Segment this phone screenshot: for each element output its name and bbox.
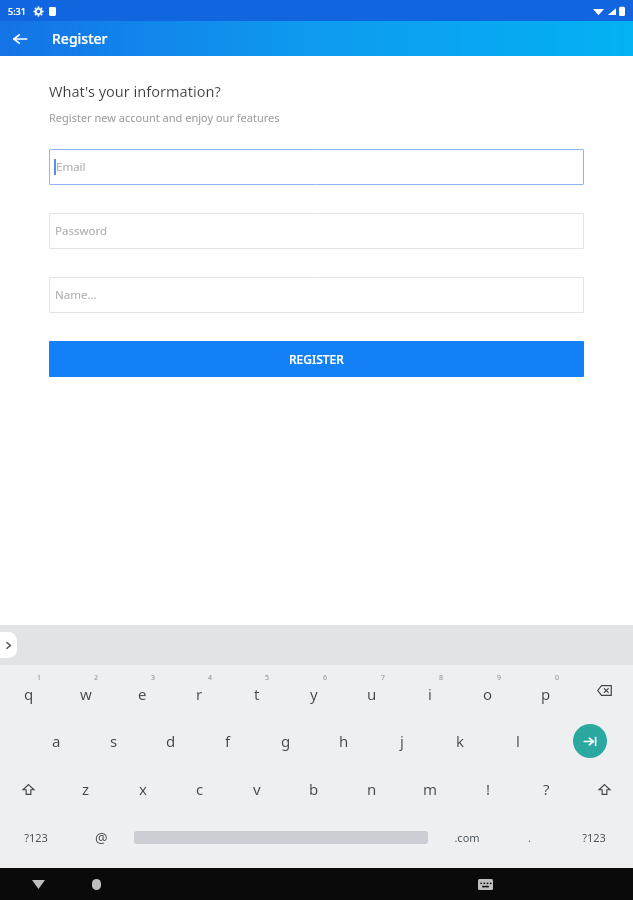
staticText: a	[52, 731, 61, 751]
button[interactable]: 0	[517, 665, 575, 716]
staticText: c	[196, 779, 204, 799]
staticText: 0	[555, 673, 560, 683]
staticText: 9	[497, 673, 502, 683]
button[interactable]: 7	[343, 665, 401, 716]
button[interactable]: .com	[431, 813, 503, 861]
button[interactable]: ?	[517, 765, 575, 813]
button[interactable]: 8	[401, 665, 459, 716]
staticText: 7	[381, 673, 386, 683]
button[interactable]: Shift	[575, 765, 633, 813]
button[interactable]: 6	[285, 665, 343, 716]
button[interactable]: ?123	[555, 813, 633, 861]
button[interactable]: Hide keyboard	[24, 870, 52, 898]
button[interactable]: Switch keyboard	[471, 870, 499, 898]
button[interactable]: z	[57, 765, 114, 813]
button[interactable]: s	[85, 716, 142, 765]
button[interactable]: REGISTER	[49, 341, 584, 377]
button[interactable]: 9	[459, 665, 517, 716]
staticText: k	[456, 731, 465, 751]
staticText: v	[253, 779, 261, 799]
button[interactable]: g	[257, 716, 315, 765]
staticText: What's your information?	[49, 81, 221, 101]
staticText: l	[516, 731, 520, 751]
button[interactable]: 5	[228, 665, 285, 716]
staticText: n	[367, 779, 377, 799]
staticText: u	[367, 684, 377, 704]
staticText: g	[281, 731, 291, 751]
button[interactable]: ?123	[0, 813, 72, 861]
staticText: s	[110, 731, 118, 751]
staticText: d	[166, 731, 176, 751]
button[interactable]: v	[228, 765, 285, 813]
button[interactable]: 4	[171, 665, 228, 716]
staticText: ?	[543, 779, 550, 799]
button[interactable]: .	[503, 813, 555, 861]
button[interactable]: Expand suggestions	[0, 632, 17, 658]
staticText: x	[139, 779, 147, 799]
button[interactable]: Email	[49, 149, 584, 185]
staticText: 8	[439, 673, 444, 683]
button[interactable]: Password	[49, 213, 584, 249]
button[interactable]: !	[459, 765, 517, 813]
staticText: 4	[208, 673, 213, 683]
button[interactable]: x	[114, 765, 171, 813]
staticText: 5:31	[8, 5, 26, 17]
staticText: f	[225, 731, 231, 751]
staticText: 3	[151, 673, 156, 683]
staticText: m	[423, 779, 438, 799]
staticText: REGISTER	[289, 351, 344, 367]
staticText: p	[541, 684, 551, 704]
button[interactable]: At sign	[72, 813, 131, 861]
staticText: t	[254, 684, 260, 704]
button[interactable]: f	[199, 716, 257, 765]
staticText: y	[310, 684, 318, 704]
staticText: ?123	[582, 830, 606, 845]
staticText: ?123	[24, 830, 48, 845]
button[interactable]: Next	[547, 716, 633, 765]
button[interactable]: k	[431, 716, 489, 765]
button[interactable]: 3	[114, 665, 171, 716]
button[interactable]: a	[28, 716, 85, 765]
button[interactable]: 2	[57, 665, 114, 716]
button[interactable]: 1	[0, 665, 57, 716]
button[interactable]: n	[343, 765, 401, 813]
staticText: @	[95, 828, 108, 847]
staticText: j	[400, 731, 404, 751]
staticText: Password	[55, 223, 108, 239]
staticText: h	[339, 731, 349, 751]
button[interactable]: Name...	[49, 277, 584, 313]
staticText: i	[428, 684, 432, 704]
button[interactable]: h	[315, 716, 373, 765]
staticText: 2	[94, 673, 99, 683]
staticText: b	[309, 779, 319, 799]
button[interactable]: j	[373, 716, 431, 765]
staticText: z	[82, 779, 90, 799]
staticText: e	[138, 684, 147, 704]
staticText: r	[196, 684, 203, 704]
button[interactable]: Backspace	[575, 665, 633, 716]
staticText: 1	[37, 673, 42, 683]
button[interactable]: Space	[131, 813, 431, 861]
button[interactable]: d	[142, 716, 199, 765]
staticText: .com	[454, 830, 480, 845]
staticText: o	[483, 684, 493, 704]
staticText: Email	[56, 159, 86, 175]
staticText: q	[24, 684, 34, 704]
staticText: w	[80, 684, 92, 704]
staticText: Register new account and enjoy our featu…	[49, 110, 280, 125]
button[interactable]: c	[171, 765, 228, 813]
button[interactable]: m	[401, 765, 459, 813]
button[interactable]: Shift	[0, 765, 57, 813]
staticText: 5	[265, 673, 270, 683]
staticText: !	[486, 779, 491, 799]
button[interactable]: b	[285, 765, 343, 813]
button[interactable]: l	[489, 716, 547, 765]
staticText: .	[528, 830, 531, 845]
staticText: Name...	[55, 287, 97, 303]
button[interactable]: Home	[82, 870, 110, 898]
staticText: Register	[52, 29, 108, 48]
button[interactable]: Back	[6, 25, 34, 53]
staticText: 6	[323, 673, 328, 683]
